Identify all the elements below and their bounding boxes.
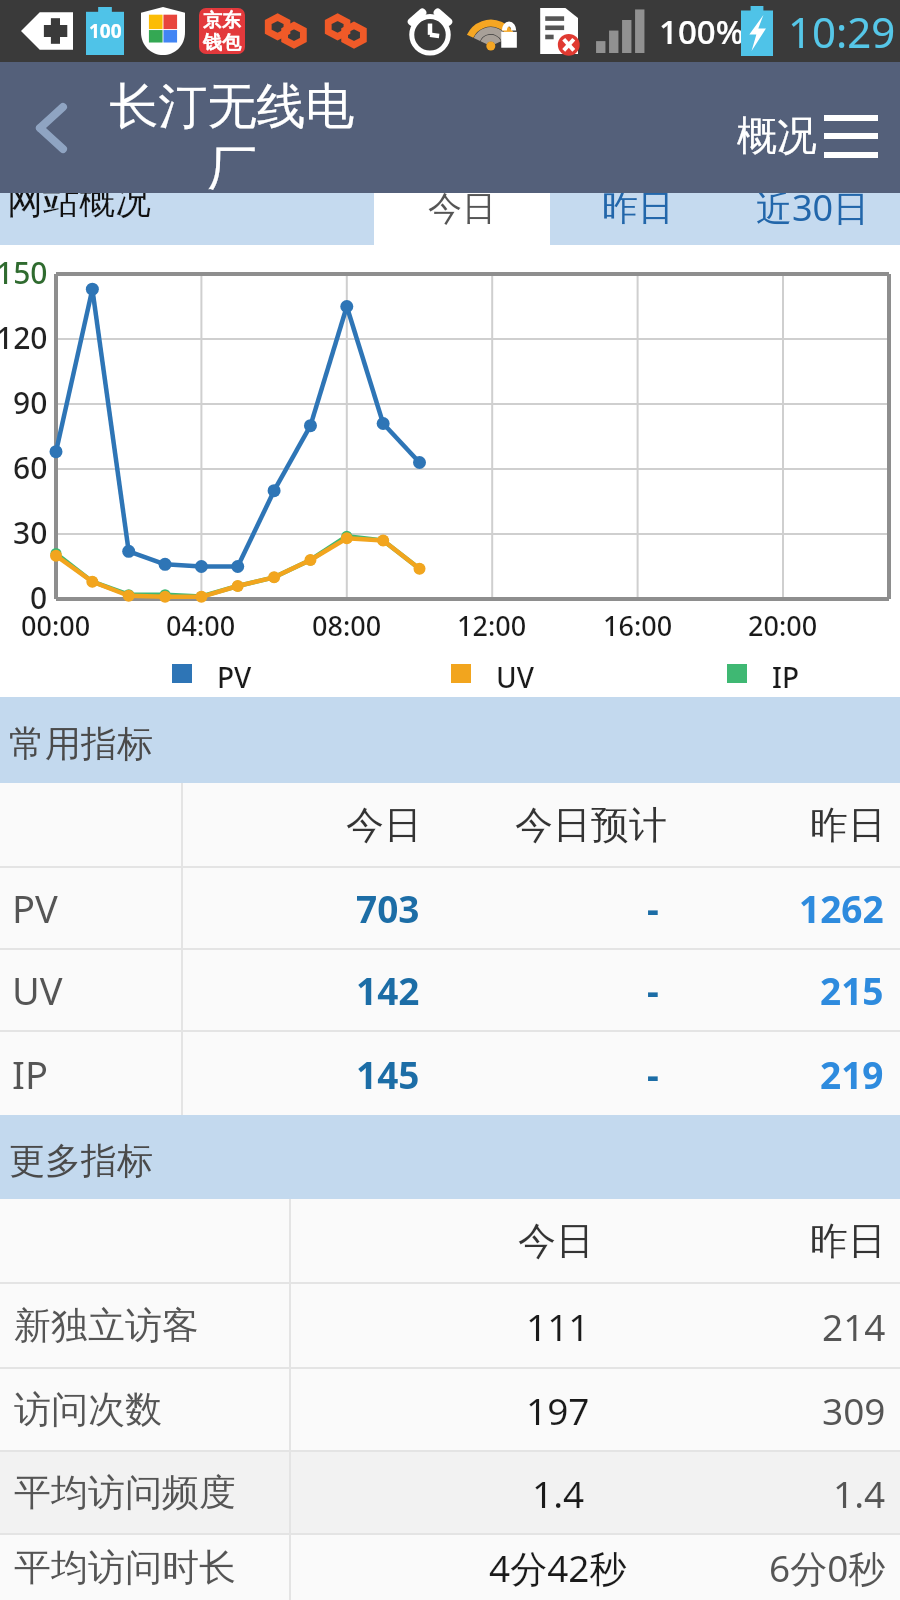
staticText: 今日 — [518, 1217, 594, 1265]
button[interactable]: 今日 — [374, 193, 550, 245]
staticText: - — [647, 883, 659, 933]
staticText: 京东 钱包 — [203, 9, 241, 54]
staticText: 08:00 — [312, 607, 382, 644]
staticText: 新独立访客 — [14, 1302, 199, 1349]
staticText: 1.4 — [833, 1468, 886, 1518]
button[interactable]: IP — [0, 1032, 900, 1115]
staticText: 90 — [13, 382, 48, 423]
staticText: 近30日 — [756, 183, 870, 232]
staticText: 6分0秒 — [769, 1542, 886, 1593]
button[interactable]: PV — [172, 650, 207, 688]
staticText: PV — [12, 882, 58, 934]
button[interactable]: 近30日 — [725, 193, 900, 245]
button[interactable]: 昨日 — [550, 193, 725, 245]
staticText: 20:00 — [748, 607, 818, 644]
staticText: 197 — [526, 1385, 590, 1435]
staticText: 常用指标 — [9, 721, 153, 766]
staticText: 100% — [659, 9, 744, 54]
staticText: 120 — [0, 317, 48, 358]
staticText: 昨日 — [810, 801, 886, 849]
staticText: PV — [217, 658, 252, 696]
staticText: 1.4 — [532, 1468, 585, 1518]
staticText: 10:29 — [788, 3, 896, 60]
staticText: 概况 — [737, 110, 817, 160]
button[interactable]: 访问次数 — [0, 1369, 900, 1450]
staticText: 网站概况 — [7, 178, 151, 223]
staticText: 219 — [820, 1049, 884, 1099]
button[interactable]: PV — [0, 868, 900, 948]
staticText: IP — [772, 658, 799, 696]
button[interactable]: IP — [727, 650, 754, 688]
button[interactable]: 概况 — [737, 110, 878, 160]
staticText: 703 — [356, 883, 420, 933]
staticText: UV — [12, 964, 63, 1016]
staticText: 昨日 — [602, 185, 674, 230]
staticText: 4分42秒 — [489, 1542, 627, 1593]
staticText: 今日 — [346, 801, 422, 849]
staticText: 100 — [89, 18, 122, 44]
button[interactable]: 平均访问频度 — [0, 1452, 900, 1533]
staticText: 访问次数 — [14, 1386, 162, 1433]
staticText: - — [647, 965, 659, 1015]
staticText: 60 — [13, 447, 48, 488]
staticText: 平均访问频度 — [14, 1469, 236, 1516]
staticText: 309 — [822, 1385, 886, 1435]
staticText: 昨日 — [810, 1217, 886, 1265]
staticText: 16:00 — [603, 607, 673, 644]
staticText: 142 — [356, 965, 420, 1015]
staticText: 30 — [13, 512, 48, 553]
staticText: 12:00 — [457, 607, 527, 644]
staticText: - — [647, 1049, 659, 1099]
staticText: 长汀无线电厂 — [108, 76, 356, 199]
staticText: 145 — [356, 1049, 420, 1099]
staticText: 1262 — [799, 883, 884, 933]
staticText: 平均访问时长 — [14, 1544, 236, 1591]
staticText: 04:00 — [166, 607, 236, 644]
staticText: 今日 — [428, 187, 496, 230]
staticText: 00:00 — [21, 607, 91, 644]
staticText: 214 — [822, 1301, 886, 1351]
button[interactable]: 新独立访客 — [0, 1284, 900, 1367]
staticText: 111 — [526, 1301, 590, 1351]
staticText: 215 — [820, 965, 884, 1015]
staticText: 150 — [0, 252, 48, 293]
button[interactable]: 平均访问时长 — [0, 1535, 900, 1600]
button[interactable]: UV — [0, 950, 900, 1030]
button[interactable]: Back — [0, 62, 104, 193]
button[interactable]: UV — [451, 650, 489, 688]
staticText: 更多指标 — [9, 1138, 153, 1183]
staticText: 0 — [30, 577, 48, 618]
staticText: IP — [12, 1048, 48, 1100]
button[interactable]: 网站概况 — [0, 193, 374, 245]
staticText: 今日预计 — [515, 801, 667, 849]
staticText: UV — [496, 658, 534, 696]
